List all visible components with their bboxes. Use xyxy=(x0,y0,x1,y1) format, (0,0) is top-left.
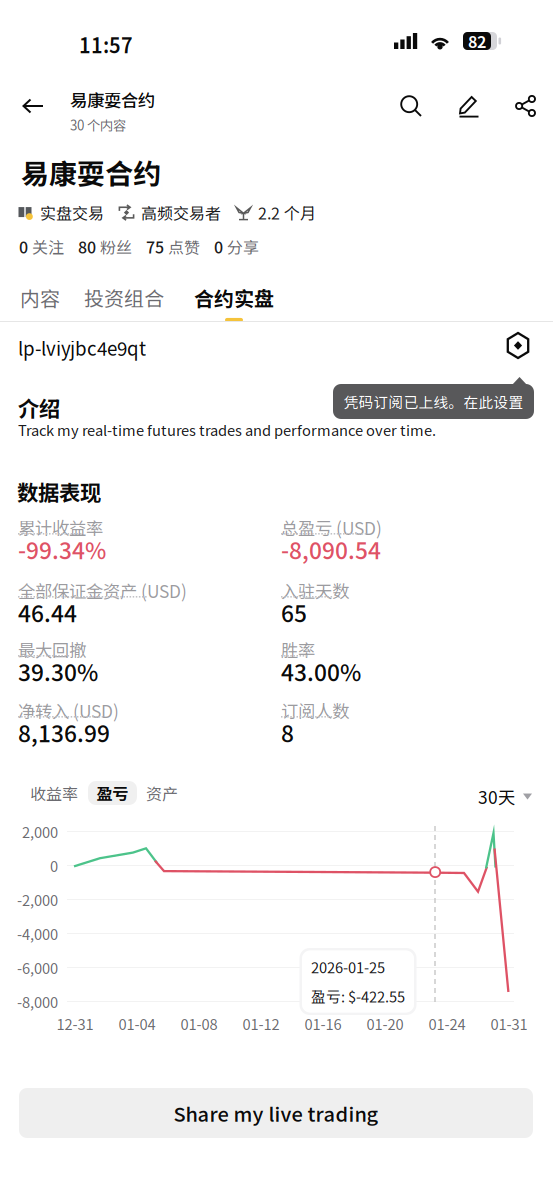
staticText: 01-16 xyxy=(304,1013,341,1034)
button[interactable]: Edit xyxy=(457,94,481,118)
staticText: 易康耍合约 xyxy=(70,87,155,112)
staticText: Track my real-time futures trades and pe… xyxy=(18,419,436,440)
staticText: 8,136.99 xyxy=(18,716,110,749)
staticText: Share my live trading xyxy=(173,1098,378,1127)
staticText: -2,000 xyxy=(17,889,58,910)
staticText: 订阅人数 xyxy=(281,698,349,723)
staticText: 30天 xyxy=(478,784,515,809)
staticText: -8,090.54 xyxy=(281,533,381,566)
staticText: 合约实盘 xyxy=(194,283,274,312)
button[interactable]: Share my live trading xyxy=(19,1088,533,1138)
staticText: 胜率 xyxy=(281,637,315,662)
staticText: 43.00% xyxy=(281,655,361,688)
button[interactable]: 30天 xyxy=(478,784,532,809)
staticText: 75 xyxy=(146,235,164,258)
button[interactable]: Search xyxy=(399,94,423,118)
staticText: 2026-01-25 xyxy=(311,956,385,977)
staticText: 2.2 个月 xyxy=(258,201,316,224)
staticText: 01-04 xyxy=(118,1013,155,1034)
staticText: 46.44 xyxy=(18,596,77,629)
staticText: 实盘交易 xyxy=(40,201,104,224)
staticText: 资产 xyxy=(146,781,178,805)
staticText: 65 xyxy=(281,596,307,629)
staticText: 分享 xyxy=(227,235,259,258)
staticText: 80 xyxy=(78,235,96,258)
staticText: 凭码订阅已上线。在此设置 xyxy=(343,391,523,412)
staticText: 介绍 xyxy=(18,392,60,423)
staticText: 0 xyxy=(214,235,223,258)
staticText: -4,000 xyxy=(17,923,58,944)
button[interactable]: Share xyxy=(514,94,538,118)
staticText: 累计收益率 xyxy=(18,515,103,540)
staticText: -6,000 xyxy=(17,957,58,978)
staticText: 0 xyxy=(50,855,58,876)
staticText: 高频交易者 xyxy=(141,201,221,224)
staticText: 盈亏 xyxy=(96,781,128,805)
staticText: 01-31 xyxy=(490,1013,527,1034)
staticText: 点赞 xyxy=(168,235,200,258)
staticText: 30 个内容 xyxy=(70,115,126,134)
staticText: 内容 xyxy=(20,283,60,312)
button[interactable]: 合约实盘 xyxy=(194,283,274,322)
button[interactable]: 内容 xyxy=(20,283,60,312)
button[interactable]: 盈亏 xyxy=(88,781,137,805)
button[interactable]: 收益率 xyxy=(30,781,78,805)
staticText: 01-08 xyxy=(180,1013,217,1034)
staticText: 2,000 xyxy=(22,821,58,842)
staticText: 易康耍合约 xyxy=(21,152,161,192)
staticText: -99.34% xyxy=(18,533,106,566)
staticText: 关注 xyxy=(32,235,64,258)
staticText: -8,000 xyxy=(17,991,58,1012)
staticText: 盈亏: $-422.55 xyxy=(311,985,405,1007)
staticText: 总盈亏 (USD) xyxy=(281,515,382,540)
button[interactable]: Back xyxy=(22,98,44,114)
staticText: 净转入 (USD) xyxy=(18,698,119,723)
staticText: 01-24 xyxy=(428,1013,465,1034)
staticText: 12-31 xyxy=(56,1013,93,1034)
button[interactable]: 资产 xyxy=(146,781,178,805)
staticText: 投资组合 xyxy=(84,283,164,312)
staticText: 11:57 xyxy=(79,30,133,59)
staticText: lp-lviyjbc4e9qt xyxy=(18,334,146,361)
staticText: 入驻天数 xyxy=(281,578,349,603)
staticText: 82 xyxy=(468,29,486,53)
staticText: 8 xyxy=(281,716,294,749)
staticText: 39.30% xyxy=(18,655,98,688)
staticText: 收益率 xyxy=(30,781,78,805)
staticText: 0 xyxy=(19,235,28,258)
staticText: 粉丝 xyxy=(100,235,132,258)
staticText: 01-20 xyxy=(366,1013,403,1034)
staticText: 数据表现 xyxy=(17,476,101,507)
staticText: 01-12 xyxy=(242,1013,279,1034)
button[interactable]: 投资组合 xyxy=(84,283,164,312)
staticText: 最大回撤 xyxy=(18,637,86,662)
button[interactable]: Exchange badge xyxy=(505,331,531,360)
staticText: 全部保证金资产 (USD) xyxy=(18,578,187,603)
